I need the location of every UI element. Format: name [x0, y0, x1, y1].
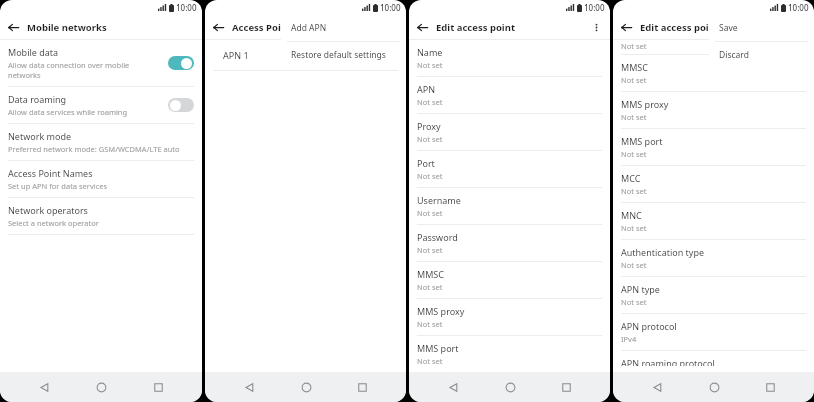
staticText: Mobile data	[8, 46, 59, 58]
staticText: Edit access point	[640, 21, 720, 34]
button[interactable]: Back	[644, 374, 670, 400]
button[interactable]: Name	[409, 40, 610, 77]
staticText: MMS port	[417, 342, 459, 354]
staticText: Edit access point	[436, 21, 516, 34]
staticText: MMS proxy	[621, 98, 669, 110]
button[interactable]: Add APN	[281, 15, 406, 41]
staticText: Network operators	[8, 204, 88, 216]
button[interactable]: Home	[88, 374, 114, 400]
staticText: Not set	[621, 149, 647, 159]
staticText: APN protocol	[621, 320, 677, 332]
button[interactable]: Home	[293, 374, 319, 400]
staticText: Password	[417, 231, 458, 243]
button[interactable]: APN	[409, 77, 610, 114]
button[interactable]: Home	[497, 374, 523, 400]
button[interactable]: Discard	[709, 42, 814, 68]
staticText: Restore default settings	[291, 49, 386, 61]
button[interactable]: Back	[212, 21, 225, 34]
staticText: Not set	[621, 260, 647, 270]
staticText: Port	[417, 157, 435, 169]
staticText: Discard	[719, 49, 749, 61]
button[interactable]: Off	[168, 98, 194, 112]
button[interactable]: Data roaming	[0, 87, 202, 124]
staticText: Add APN	[291, 22, 327, 34]
staticText: Not set	[621, 112, 647, 122]
button[interactable]: APN 1	[205, 40, 406, 70]
staticText: Not set	[417, 134, 443, 144]
staticText: Not set	[621, 223, 647, 233]
staticText: Preferred network mode: GSM/WCDMA/LTE au…	[8, 144, 180, 154]
button[interactable]: Home	[701, 374, 727, 400]
staticText: Network mode	[8, 130, 72, 142]
staticText: Not set	[417, 208, 443, 218]
staticText: APN	[417, 83, 436, 95]
staticText: APN type	[621, 283, 660, 295]
button[interactable]: MMS proxy	[613, 92, 814, 129]
staticText: MMSC	[417, 268, 444, 280]
button[interactable]: MMS port	[409, 336, 610, 372]
button[interactable]: Username	[409, 188, 610, 225]
button[interactable]: APN type	[613, 277, 814, 314]
staticText: Not set	[417, 60, 443, 70]
staticText: IPv4	[621, 334, 637, 344]
button[interactable]: MMS port	[613, 129, 814, 166]
staticText: Allow data services while roaming	[8, 107, 128, 117]
staticText: APN 1	[223, 49, 249, 61]
staticText: Not set	[417, 171, 443, 181]
button[interactable]: Back	[31, 374, 57, 400]
button[interactable]: Back	[236, 374, 262, 400]
button[interactable]: Proxy	[409, 114, 610, 151]
button[interactable]: Recent apps	[349, 374, 375, 400]
button[interactable]: More options	[590, 21, 603, 34]
button[interactable]: Back	[416, 21, 429, 34]
staticText: Mobile networks	[27, 21, 107, 34]
button[interactable]: Access Point Names	[0, 161, 202, 198]
button[interactable]: MMS proxy	[409, 299, 610, 336]
staticText: Save	[719, 22, 738, 34]
button[interactable]: Back	[440, 374, 466, 400]
staticText: Not set	[417, 282, 443, 292]
staticText: Set up APN for data services	[8, 181, 108, 191]
staticText: Not set	[417, 97, 443, 107]
button[interactable]: Recent apps	[553, 374, 579, 400]
button[interactable]: Back	[620, 21, 633, 34]
staticText: Data roaming	[8, 93, 67, 105]
button[interactable]: APN protocol	[613, 314, 814, 351]
button[interactable]: MNC	[613, 203, 814, 240]
staticText: MMS proxy	[417, 305, 465, 317]
staticText: Not set	[417, 319, 443, 329]
staticText: 10:00	[380, 2, 401, 13]
staticText: Proxy	[417, 120, 441, 132]
button[interactable]: Network operators	[0, 198, 202, 235]
button[interactable]: MMSC	[613, 55, 814, 92]
button[interactable]: Restore default settings	[281, 42, 406, 68]
staticText: Access Point Names	[232, 21, 327, 34]
staticText: Username	[417, 194, 461, 206]
button[interactable]: Mobile data	[0, 40, 202, 87]
button[interactable]: Recent apps	[757, 374, 783, 400]
staticText: Not set	[621, 41, 647, 51]
button[interactable]: Authentication type	[613, 240, 814, 277]
button[interactable]: Network mode	[0, 124, 202, 161]
button[interactable]: MMSC	[409, 262, 610, 299]
button[interactable]: MCC	[613, 166, 814, 203]
staticText: Access Point Names	[8, 167, 93, 179]
button[interactable]: On	[168, 56, 194, 70]
staticText: MCC	[621, 172, 641, 184]
button[interactable]: Recent apps	[145, 374, 171, 400]
staticText: 10:00	[176, 2, 197, 13]
button[interactable]: Save	[709, 15, 814, 41]
staticText: Select a network operator	[8, 218, 99, 228]
button[interactable]: APN roaming protocol	[613, 351, 814, 372]
staticText: Allow data connection over mobile networ…	[8, 60, 162, 80]
staticText: MNC	[621, 209, 642, 221]
staticText: Authentication type	[621, 246, 705, 258]
staticText: Not set	[417, 245, 443, 255]
button[interactable]: Password	[409, 225, 610, 262]
staticText: Not set	[417, 356, 443, 366]
staticText: 10:00	[584, 2, 605, 13]
button[interactable]: Back	[7, 21, 20, 34]
button[interactable]: Port	[409, 151, 610, 188]
